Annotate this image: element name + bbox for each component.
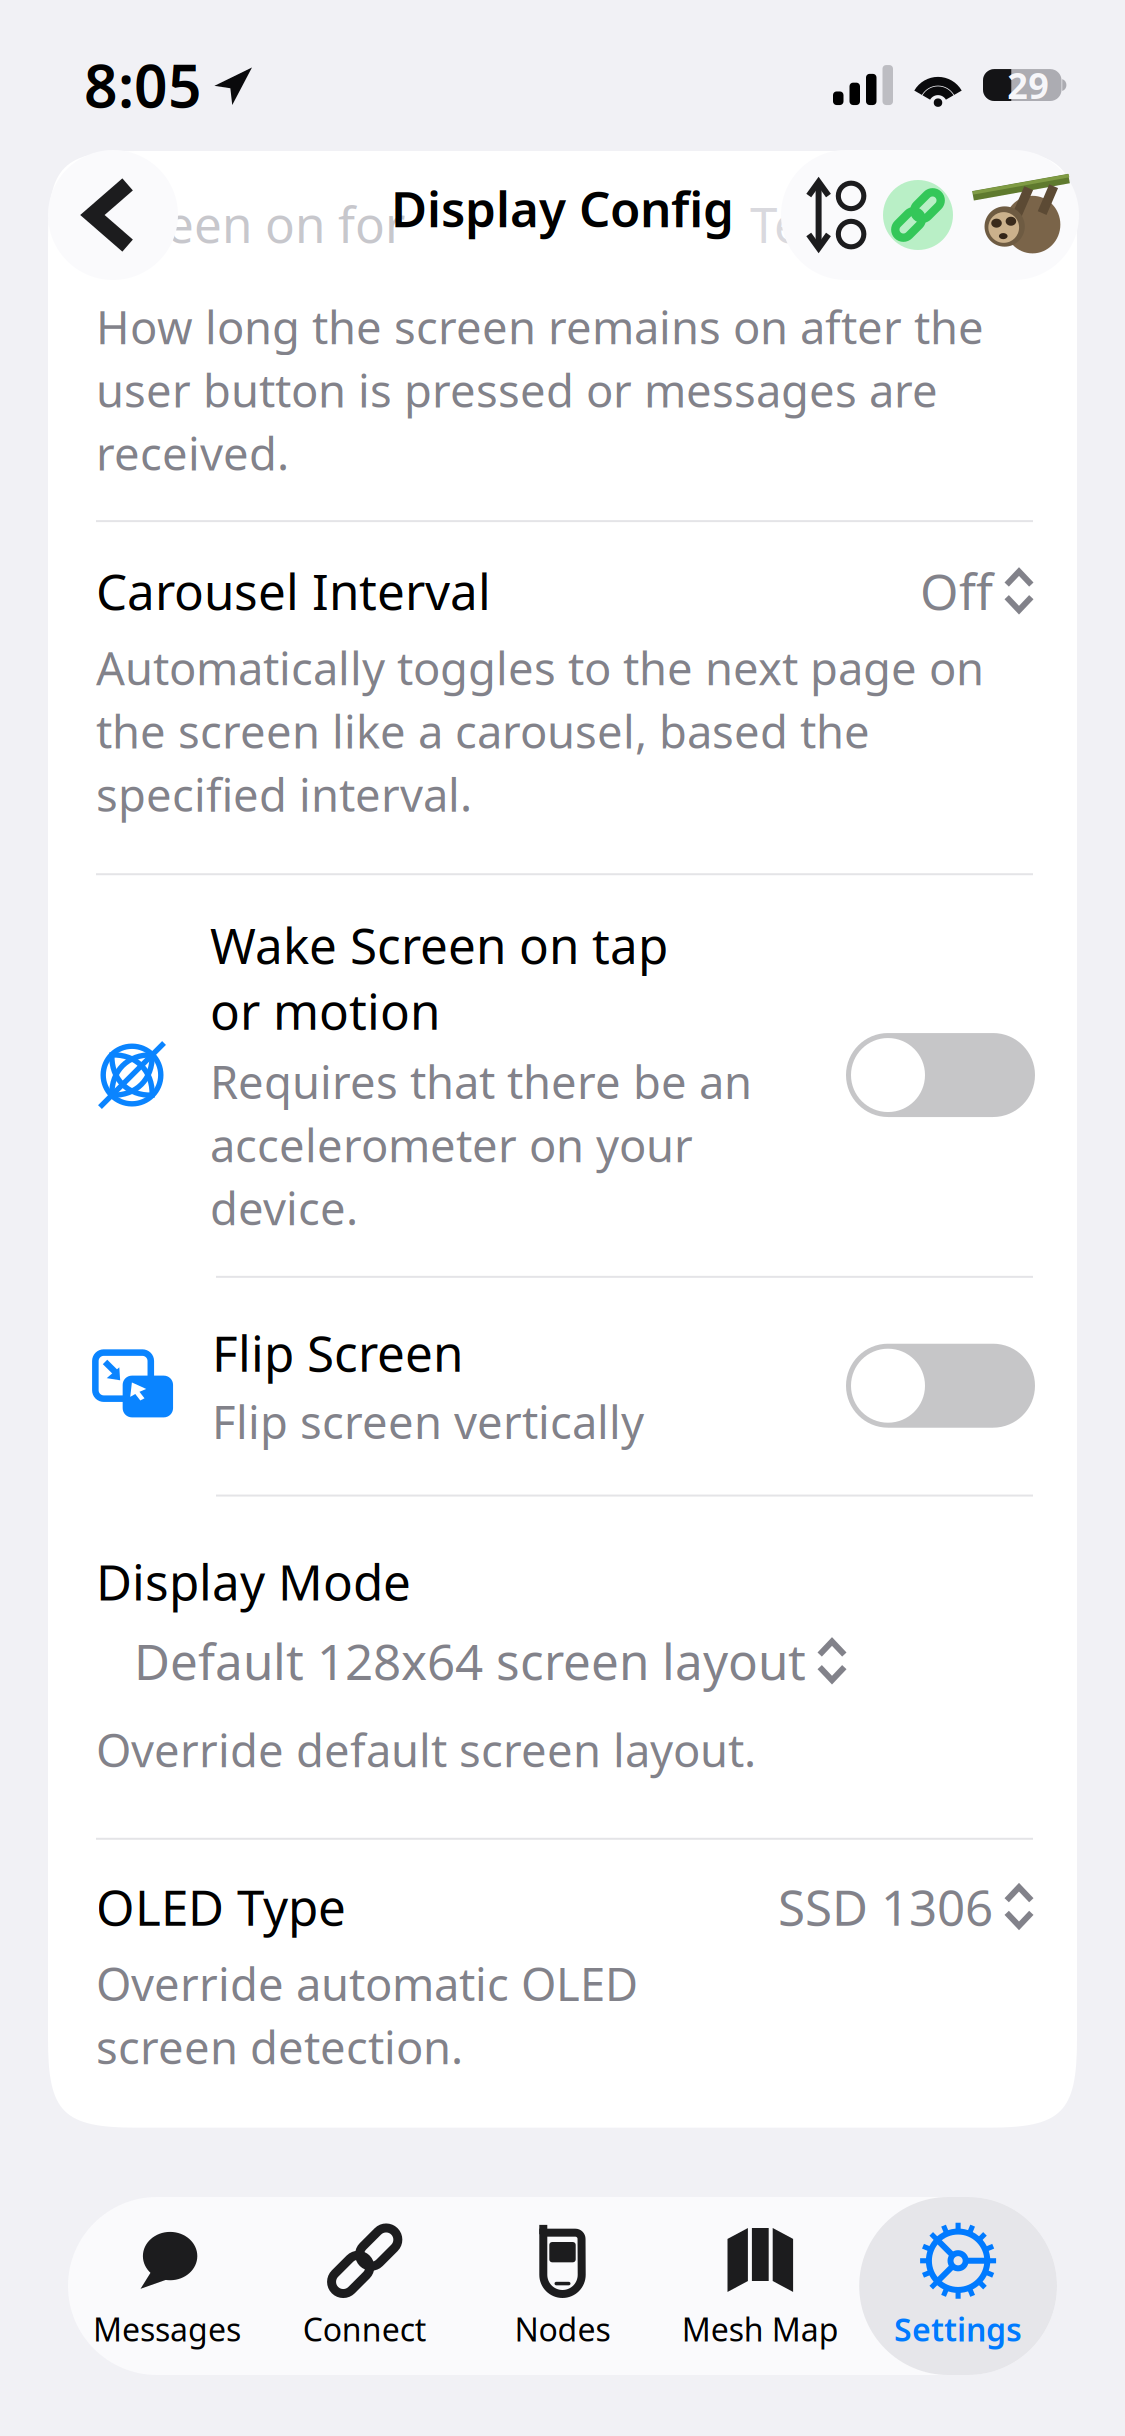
staticText: Flip screen vertically bbox=[212, 1391, 644, 1452]
button[interactable]: Connected bbox=[883, 150, 953, 280]
button[interactable]: Settings bbox=[859, 2197, 1057, 2375]
staticText: Carousel Interval bbox=[96, 558, 491, 624]
staticText: How long the screen remains on after the… bbox=[96, 296, 984, 483]
staticText: Settings bbox=[894, 2308, 1022, 2350]
staticText: Automatically toggles to the next page o… bbox=[96, 638, 984, 824]
staticText: Override automatic OLED screen detection… bbox=[96, 1953, 638, 2077]
staticText: Default 128x64 screen layout bbox=[134, 1628, 806, 1694]
staticText: Messages bbox=[93, 2308, 241, 2350]
staticText: Nodes bbox=[514, 2308, 610, 2350]
staticText: Screen on for bbox=[96, 191, 405, 256]
button[interactable]: Flip Screen bbox=[846, 1344, 1035, 1428]
button[interactable]: Back bbox=[48, 150, 178, 280]
button[interactable]: Connect bbox=[266, 2197, 464, 2375]
staticText: Mesh Map bbox=[682, 2308, 839, 2350]
button[interactable]: Default 128x64 screen layout bbox=[96, 1614, 1065, 1694]
staticText: OLED Type bbox=[96, 1874, 346, 1939]
staticText: Connect bbox=[303, 2308, 427, 2350]
staticText: Display Mode bbox=[96, 1549, 411, 1614]
button[interactable]: Messages bbox=[68, 2197, 266, 2375]
button[interactable]: OLED Type bbox=[48, 1840, 1077, 2128]
button[interactable]: Wake Screen on tap or motion bbox=[846, 1033, 1035, 1117]
staticText: Off bbox=[920, 558, 993, 624]
staticText: or motion bbox=[210, 978, 440, 1043]
staticText: 29 bbox=[1007, 61, 1049, 109]
button[interactable]: Profile bbox=[953, 150, 1079, 280]
staticText: Flip Screen bbox=[212, 1320, 463, 1385]
staticText: 8:05 bbox=[84, 46, 202, 124]
staticText: Override default screen layout. bbox=[96, 1720, 756, 1780]
button[interactable]: Carousel Interval bbox=[48, 522, 1077, 873]
button[interactable]: Sort order bbox=[781, 150, 883, 280]
staticText: SSD 1306 bbox=[778, 1874, 993, 1939]
staticText: Display Config bbox=[391, 175, 734, 241]
staticText: Wake Screen on tap bbox=[210, 912, 668, 978]
button[interactable]: Mesh Map bbox=[661, 2197, 859, 2375]
staticText: Requires that there be an accelerometer … bbox=[210, 1051, 752, 1238]
button[interactable]: Nodes bbox=[464, 2197, 661, 2375]
staticText: Ten Minutes bbox=[750, 191, 1033, 256]
